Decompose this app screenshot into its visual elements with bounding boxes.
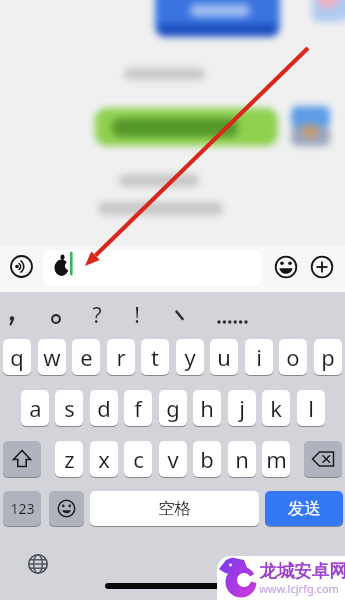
staticText: ? (89, 301, 105, 330)
button[interactable]: w (38, 339, 66, 375)
button[interactable] (311, 256, 333, 278)
button[interactable]: y (176, 339, 204, 375)
button[interactable]: n (228, 441, 256, 477)
button[interactable]: h (193, 390, 221, 426)
button[interactable]: 发送 (265, 491, 343, 526)
staticText: z (64, 444, 75, 474)
button[interactable] (28, 554, 48, 574)
staticText: 123 (10, 499, 35, 518)
staticText: o (286, 342, 300, 372)
staticText: b (200, 444, 214, 474)
button[interactable]: 123 (3, 491, 41, 526)
staticText: s (64, 393, 75, 423)
staticText: www.lcjrfg.com (259, 581, 339, 596)
button[interactable]: 空格 (90, 491, 259, 526)
staticText: 龙城安卓网 (259, 560, 345, 582)
staticText: g (166, 393, 180, 423)
staticText: d (97, 393, 111, 423)
staticText: p (321, 342, 335, 372)
button[interactable] (275, 256, 297, 278)
staticText: e (80, 342, 93, 372)
button[interactable]: s (55, 390, 83, 426)
button[interactable] (10, 255, 33, 278)
staticText: l (308, 393, 314, 423)
staticText: v (167, 444, 179, 474)
button[interactable]: u (210, 339, 238, 375)
button[interactable]: l (297, 390, 325, 426)
staticText: x (98, 444, 110, 474)
staticText: q (10, 342, 24, 372)
staticText: f (134, 393, 142, 423)
staticText: n (235, 444, 249, 474)
button[interactable]: d (90, 390, 118, 426)
staticText: 空格 (158, 498, 191, 519)
button[interactable]: z (55, 441, 83, 477)
button[interactable] (3, 441, 41, 477)
staticText: ! (129, 301, 145, 330)
staticText: w (43, 342, 61, 372)
button[interactable]: 龙城安卓网 (217, 556, 345, 600)
staticText: j (239, 393, 245, 423)
button[interactable]: f (124, 390, 152, 426)
staticText: r (116, 342, 126, 372)
button[interactable]: v (159, 441, 187, 477)
staticText: k (270, 393, 282, 423)
button[interactable]: o (279, 339, 307, 375)
button[interactable]: b (193, 441, 221, 477)
button[interactable]: p (314, 339, 342, 375)
button[interactable]: r (107, 339, 135, 375)
staticText: m (266, 444, 287, 474)
button[interactable]: j (228, 390, 256, 426)
button[interactable]: x (90, 441, 118, 477)
button[interactable]: q (3, 339, 31, 375)
button[interactable] (43, 250, 262, 286)
staticText: u (217, 342, 231, 372)
button[interactable]: i (245, 339, 273, 375)
staticText: a (29, 393, 42, 423)
button[interactable]: e (72, 339, 100, 375)
button[interactable]: t (141, 339, 169, 375)
staticText: c (133, 444, 144, 474)
button[interactable]: c (124, 441, 152, 477)
staticText: t (151, 342, 159, 372)
button[interactable] (49, 491, 84, 526)
button[interactable]: g (159, 390, 187, 426)
button[interactable] (304, 441, 342, 477)
staticText: y (184, 342, 196, 372)
staticText: i (256, 342, 262, 372)
button[interactable]: k (262, 390, 290, 426)
staticText: 发送 (288, 498, 321, 519)
staticText: h (200, 393, 214, 423)
button[interactable]: a (21, 390, 49, 426)
button[interactable]: m (262, 441, 290, 477)
